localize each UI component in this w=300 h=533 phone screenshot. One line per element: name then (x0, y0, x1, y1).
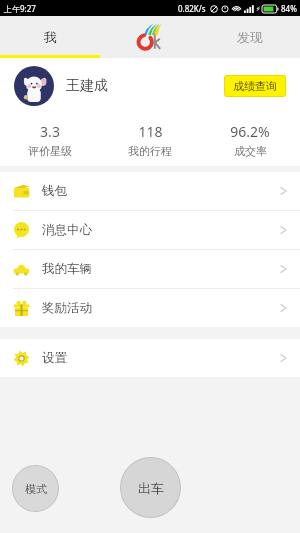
staticText: 成交率 (234, 144, 267, 158)
button[interactable]: 奖励活动 (0, 289, 300, 327)
button[interactable]: 3.3 (0, 114, 100, 166)
staticText: 王建成 (66, 77, 108, 95)
staticText: 成绩查询 (233, 79, 277, 93)
staticText: 我的车辆 (42, 261, 92, 277)
staticText: 模式 (25, 482, 47, 496)
staticText: 我 (44, 29, 57, 45)
button[interactable]: 我 (0, 16, 100, 58)
staticText: 发现 (237, 29, 263, 45)
button[interactable]: 成绩查询 (224, 75, 286, 97)
button[interactable]: 发现 (200, 16, 300, 58)
staticText: 评价星级 (28, 144, 72, 158)
staticText: 118 (138, 122, 163, 141)
staticText: 0.82K/s (178, 3, 206, 14)
staticText: 84% (281, 3, 297, 14)
staticText: ⚡ (256, 5, 261, 12)
staticText: 上午9:27 (4, 3, 36, 14)
button[interactable]: 设置 (0, 339, 300, 377)
staticText: 设置 (42, 350, 67, 366)
staticText: 出车 (138, 480, 164, 496)
staticText: 奖励活动 (42, 300, 92, 316)
button[interactable]: 消息中心 (0, 211, 300, 250)
button[interactable]: 王建成 (0, 58, 300, 114)
staticText: 钱包 (42, 183, 67, 199)
button[interactable]: 96.2% (200, 114, 300, 166)
button[interactable]: 钱包 (0, 172, 300, 211)
button[interactable]: 出车 (120, 457, 181, 518)
button[interactable]: Logo (100, 16, 200, 58)
button[interactable]: 我的车辆 (0, 250, 300, 289)
staticText: 我的行程 (128, 144, 172, 158)
button[interactable]: 模式 (12, 465, 59, 512)
button[interactable]: 118 (100, 114, 200, 166)
staticText: 96.2% (230, 122, 270, 141)
staticText: 消息中心 (42, 222, 92, 238)
staticText: 3.3 (40, 122, 60, 141)
